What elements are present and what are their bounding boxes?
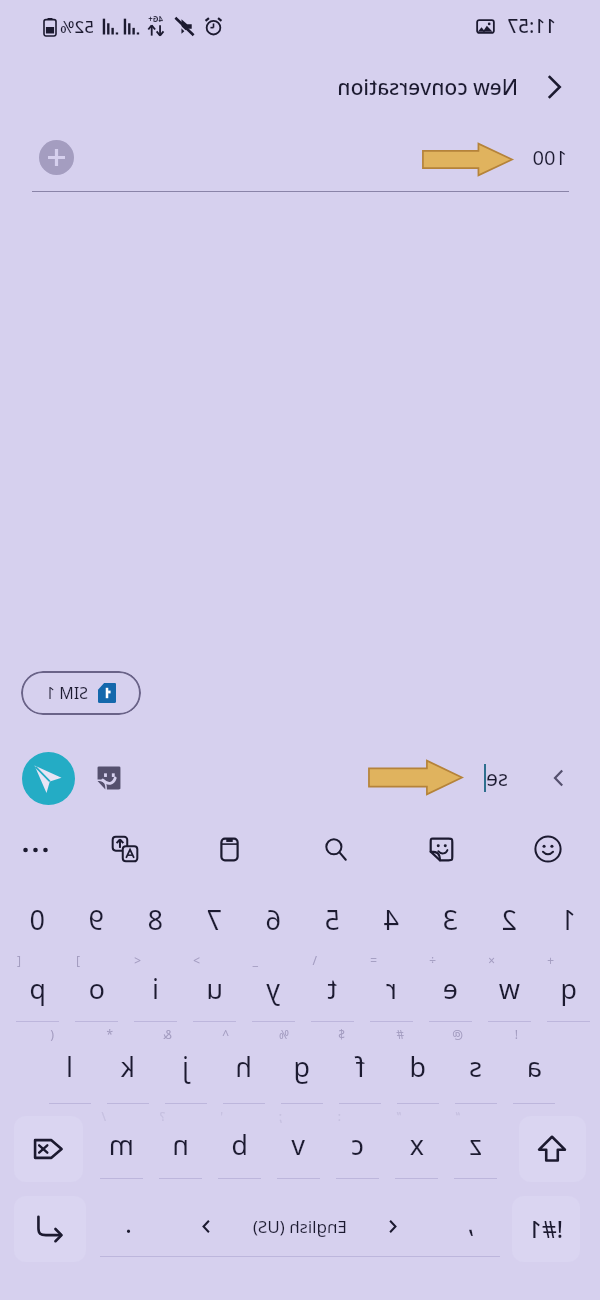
staticText: u — [206, 970, 223, 1007]
staticText: “ — [455, 1108, 460, 1124]
button[interactable]: Key h — [215, 1022, 273, 1104]
staticText: @ — [452, 1026, 463, 1042]
button[interactable]: Back — [530, 63, 578, 111]
staticText: q — [560, 970, 577, 1007]
button[interactable]: Key b — [210, 1104, 269, 1179]
button[interactable]: Key x — [387, 1104, 446, 1179]
staticText: ^ — [222, 1026, 229, 1042]
staticText: . — [125, 1205, 132, 1240]
staticText: !#1 — [528, 1213, 563, 1244]
button[interactable]: Stickers — [89, 758, 129, 798]
button[interactable]: Key d — [389, 1022, 447, 1104]
staticText: d — [409, 1048, 426, 1085]
button[interactable]: Key m — [92, 1104, 151, 1179]
button[interactable]: Add recipient — [39, 140, 74, 175]
button[interactable]: Expand toolbar — [542, 761, 576, 795]
button[interactable]: SIM 1 — [21, 671, 141, 715]
staticText: k — [120, 1048, 135, 1085]
button[interactable]: Key l — [41, 1022, 99, 1104]
staticText: s — [469, 1048, 482, 1085]
button[interactable]: !#1 — [512, 1196, 580, 1262]
staticText: y — [266, 970, 280, 1007]
button[interactable]: Key r — [362, 948, 421, 1022]
button[interactable]: Key a — [505, 1022, 563, 1104]
button[interactable]: Key u — [185, 948, 244, 1022]
button[interactable]: Stickers — [416, 818, 468, 880]
staticText: n — [172, 1126, 189, 1163]
staticText: ; — [278, 1108, 282, 1124]
button[interactable]: Key s — [447, 1022, 505, 1104]
button[interactable]: Key 2 — [480, 884, 539, 948]
button[interactable]: Key w — [480, 948, 539, 1022]
staticText: x — [409, 1126, 424, 1163]
staticText: 1 — [560, 901, 576, 938]
button[interactable]: Backspace — [14, 1116, 83, 1182]
staticText: 7 — [206, 901, 222, 938]
button[interactable]: Key i — [126, 948, 185, 1022]
staticText: % — [279, 1026, 289, 1042]
button[interactable]: Key 1 — [539, 884, 598, 948]
button[interactable]: Key 8 — [126, 884, 185, 948]
button[interactable]: Key o — [67, 948, 126, 1022]
button[interactable]: Shift — [519, 1116, 586, 1182]
button[interactable]: Key 6 — [244, 884, 303, 948]
staticText: 4 — [383, 901, 399, 938]
button[interactable]: Key 7 — [185, 884, 244, 948]
staticText: 5 — [324, 901, 340, 938]
staticText: r — [385, 970, 397, 1007]
button[interactable]: Key f — [331, 1022, 389, 1104]
button[interactable]: . — [100, 1192, 158, 1260]
staticText: z — [469, 1126, 482, 1163]
staticText: h — [235, 1048, 252, 1085]
button[interactable]: Translate — [99, 818, 151, 880]
staticText: 2 — [501, 901, 517, 938]
staticText: g — [293, 1048, 310, 1085]
button[interactable]: English (US) — [158, 1192, 442, 1260]
button[interactable]: Key t — [303, 948, 362, 1022]
button[interactable]: Key z — [446, 1104, 505, 1179]
button[interactable]: Key q — [539, 948, 598, 1022]
button[interactable]: Key v — [269, 1104, 328, 1179]
button[interactable]: Key k — [99, 1022, 157, 1104]
button[interactable]: Key 9 — [67, 884, 126, 948]
staticText: l — [66, 1048, 73, 1085]
button[interactable]: Send — [22, 752, 75, 805]
staticText: o — [88, 970, 105, 1007]
staticText: ] — [76, 952, 80, 968]
staticText: m — [108, 1126, 134, 1163]
button[interactable]: Key 3 — [421, 884, 480, 948]
button[interactable]: Key j — [157, 1022, 215, 1104]
button[interactable]: , — [442, 1192, 500, 1260]
staticText: c — [351, 1126, 364, 1163]
staticText: < — [134, 952, 141, 968]
button[interactable]: Key p — [8, 948, 67, 1022]
staticText: e — [442, 970, 458, 1007]
staticText: * — [106, 1026, 113, 1042]
staticText: = — [370, 952, 377, 968]
staticText: + — [547, 952, 554, 968]
staticText: 11:57 — [507, 13, 556, 39]
button[interactable]: Key y — [244, 948, 303, 1022]
button[interactable]: Key e — [421, 948, 480, 1022]
staticText: $ — [338, 1026, 345, 1042]
button[interactable]: Clipboard — [204, 818, 256, 880]
staticText: ÷ — [429, 952, 436, 968]
staticText: 8 — [147, 901, 163, 938]
staticText: se — [486, 764, 508, 793]
staticText: & — [163, 1026, 172, 1042]
button[interactable]: Key 5 — [303, 884, 362, 948]
staticText: f — [355, 1048, 365, 1085]
staticText: 0 — [29, 901, 45, 938]
button[interactable]: More options — [10, 818, 62, 880]
button[interactable]: Key 4 — [362, 884, 421, 948]
button[interactable]: Search — [310, 818, 362, 880]
button[interactable]: Key c — [328, 1104, 387, 1179]
button[interactable]: Key g — [273, 1022, 331, 1104]
staticText: × — [488, 952, 495, 968]
button[interactable]: Enter — [14, 1196, 86, 1262]
staticText: # — [396, 1026, 404, 1042]
button[interactable]: Key 0 — [8, 884, 67, 948]
staticText: English (US) — [252, 1215, 347, 1238]
button[interactable]: Key n — [151, 1104, 210, 1179]
button[interactable]: Emoji — [522, 818, 574, 880]
